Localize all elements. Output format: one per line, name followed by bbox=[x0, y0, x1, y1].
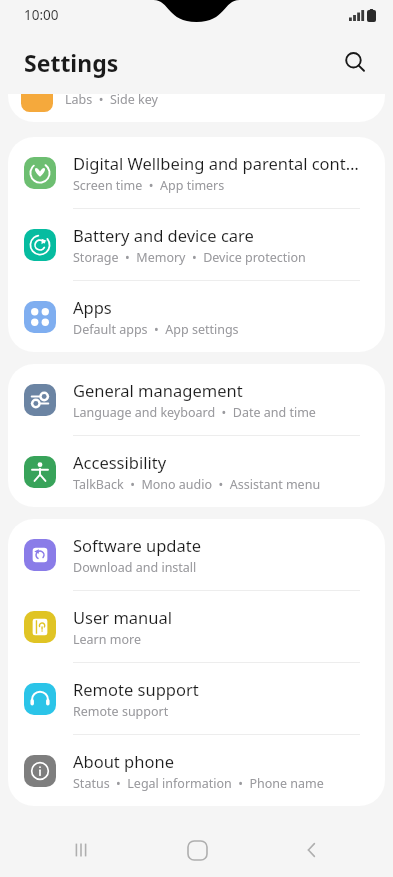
staticText: 10:00 bbox=[24, 6, 59, 24]
button[interactable]: Software update bbox=[8, 519, 385, 590]
staticText: Software update bbox=[73, 534, 201, 556]
staticText: General management bbox=[73, 379, 243, 401]
staticText: Accessibility bbox=[73, 451, 167, 473]
staticText: Default apps • App settings bbox=[73, 321, 239, 338]
button[interactable]: Home bbox=[162, 823, 232, 877]
staticText: Apps bbox=[73, 296, 112, 318]
button[interactable]: User manual bbox=[8, 591, 385, 662]
button[interactable]: Accessibility bbox=[8, 436, 385, 507]
staticText: Learn more bbox=[73, 631, 141, 648]
staticText: Screen time • App timers bbox=[73, 177, 225, 194]
button[interactable]: About phone bbox=[8, 735, 385, 806]
staticText: Download and install bbox=[73, 559, 197, 576]
staticText: Remote support bbox=[73, 703, 169, 720]
staticText: Remote support bbox=[73, 678, 199, 700]
button[interactable]: Back bbox=[277, 823, 347, 877]
staticText: About phone bbox=[73, 750, 174, 772]
staticText: Language and keyboard • Date and time bbox=[73, 404, 316, 421]
staticText: TalkBack • Mono audio • Assistant menu bbox=[73, 476, 321, 493]
button[interactable]: Digital Wellbeing and parental controls bbox=[8, 137, 385, 208]
button[interactable]: Search bbox=[333, 40, 377, 84]
staticText: Labs • Side key bbox=[65, 94, 158, 108]
button[interactable]: General management bbox=[8, 364, 385, 435]
staticText: Battery and device care bbox=[73, 224, 254, 246]
staticText: Settings bbox=[24, 47, 119, 78]
button[interactable]: Recent apps bbox=[46, 823, 116, 877]
button[interactable]: Remote support bbox=[8, 663, 385, 734]
staticText: User manual bbox=[73, 606, 172, 628]
staticText: Storage • Memory • Device protection bbox=[73, 249, 306, 266]
button[interactable]: Apps bbox=[8, 281, 385, 352]
button[interactable]: Labs • Side key bbox=[8, 94, 385, 122]
button[interactable]: Battery and device care bbox=[8, 209, 385, 280]
staticText: Status • Legal information • Phone name bbox=[73, 775, 324, 792]
staticText: Digital Wellbeing and parental controls bbox=[73, 152, 365, 174]
